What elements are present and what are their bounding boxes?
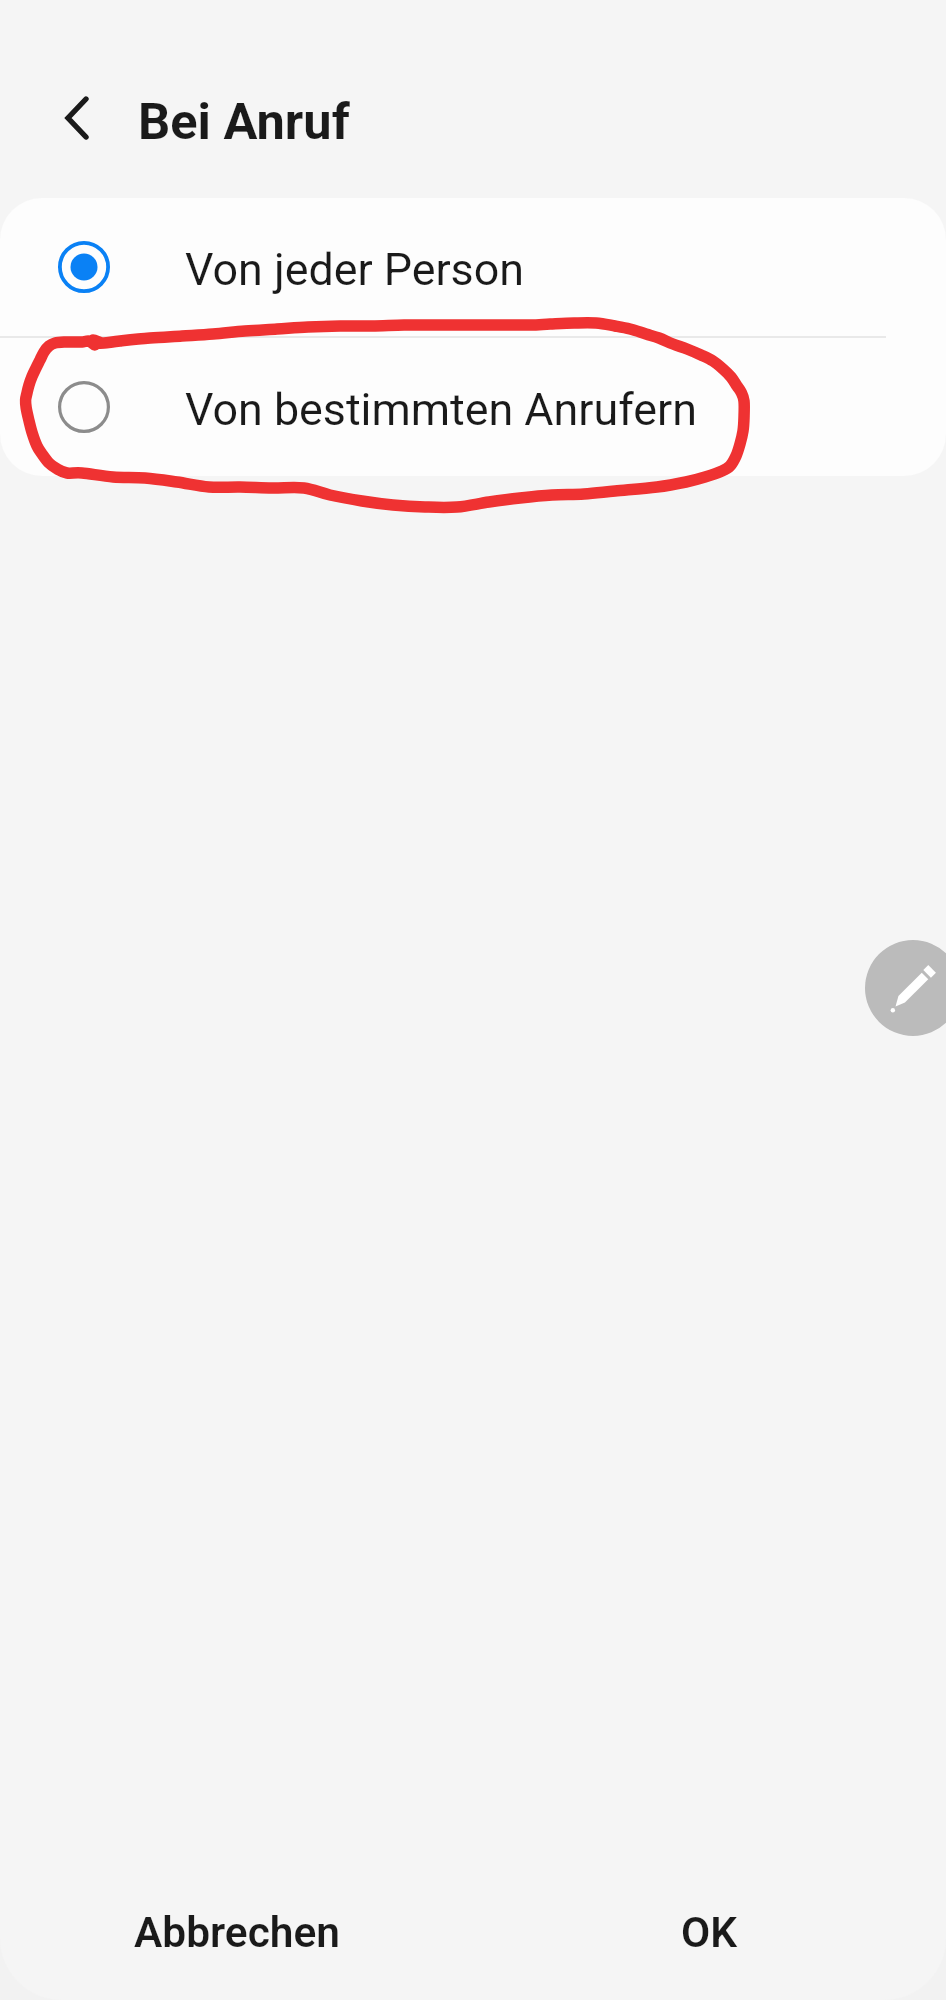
button[interactable]: Edit (865, 940, 946, 1036)
button[interactable]: OK (473, 1840, 946, 2000)
button[interactable]: Back (23, 64, 131, 172)
staticText: Von bestimmten Anrufern (185, 383, 697, 436)
button[interactable]: Von jeder Person (0, 198, 946, 336)
staticText: Von jeder Person (185, 243, 525, 296)
staticText: OK (681, 1908, 738, 1958)
staticText: Bei Anruf (138, 92, 350, 151)
button[interactable]: Abbrechen (0, 1840, 473, 2000)
staticText: Abbrechen (134, 1908, 340, 1958)
button[interactable]: Von bestimmten Anrufern (0, 338, 946, 476)
